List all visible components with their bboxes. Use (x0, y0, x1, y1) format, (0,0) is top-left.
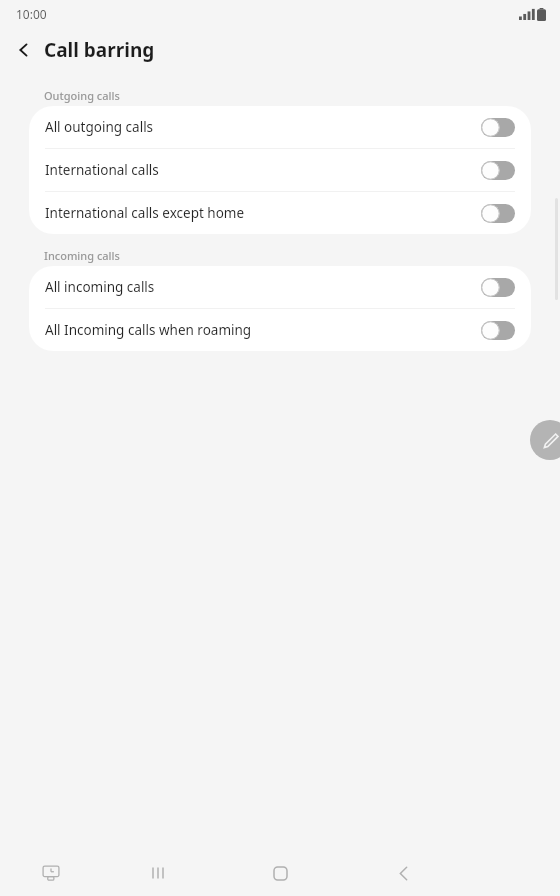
button[interactable]: Recents (141, 856, 175, 890)
staticText: All outgoing calls (45, 118, 481, 136)
button[interactable]: All Incoming calls when roaming (29, 309, 531, 351)
button[interactable]: All outgoing calls (29, 106, 531, 148)
button[interactable]: Back (386, 856, 420, 890)
button[interactable]: Toggle (481, 321, 515, 340)
staticText: Incoming calls (44, 248, 120, 263)
button[interactable]: Back (6, 32, 42, 68)
staticText: 10:00 (16, 6, 47, 22)
button[interactable]: International calls except home (29, 192, 531, 234)
button[interactable]: Toggle (481, 204, 515, 223)
button[interactable]: Toggle (481, 161, 515, 180)
staticText: Outgoing calls (44, 88, 120, 103)
button[interactable]: International calls (29, 149, 531, 191)
button[interactable]: All incoming calls (29, 266, 531, 308)
staticText: International calls except home (45, 204, 481, 222)
button[interactable]: DeX (34, 856, 68, 890)
staticText: International calls (45, 161, 481, 179)
button[interactable]: Toggle (481, 278, 515, 297)
staticText: All incoming calls (45, 278, 481, 296)
staticText: Call barring (44, 37, 155, 63)
button[interactable]: Edit (530, 420, 560, 460)
button[interactable]: Home (263, 856, 297, 890)
button[interactable]: Toggle (481, 118, 515, 137)
staticText: All Incoming calls when roaming (45, 321, 481, 339)
